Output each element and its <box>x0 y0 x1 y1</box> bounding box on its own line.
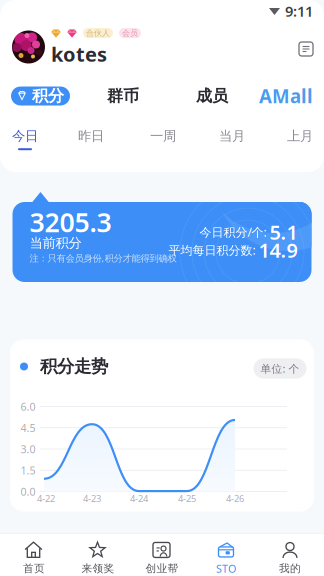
button[interactable]: 创业帮 <box>130 541 194 575</box>
staticText: 群币 <box>107 86 139 106</box>
staticText: 3205.3 <box>29 204 111 240</box>
button[interactable]: 我的 <box>258 541 322 575</box>
staticText: 6.0 <box>20 399 35 414</box>
staticText: 单位: 个 <box>260 361 299 376</box>
staticText: 上月 <box>287 128 313 144</box>
staticText: 积分 <box>32 86 64 106</box>
button[interactable]: Notices <box>299 42 313 56</box>
button[interactable]: 今日 <box>5 128 45 150</box>
staticText: 平均每日积分数: <box>168 242 255 258</box>
staticText: 来领奖 <box>81 562 114 575</box>
staticText: 9:11 <box>285 1 313 21</box>
staticText: 4-22 <box>37 492 55 505</box>
staticText: 成员 <box>196 86 228 106</box>
button[interactable]: 来领奖 <box>66 541 130 575</box>
staticText: kotes <box>51 41 107 67</box>
button[interactable]: 首页 <box>2 541 66 575</box>
button[interactable]: 积分 <box>11 86 70 105</box>
staticText: STO <box>216 561 236 576</box>
staticText: 昨日 <box>78 128 104 144</box>
staticText: 4-24 <box>130 492 148 505</box>
button[interactable]: 单位: 个 <box>253 358 306 379</box>
staticText: 4-26 <box>226 492 244 505</box>
staticText: 今日积分/个: <box>199 224 266 240</box>
staticText: 4.5 <box>20 421 35 435</box>
staticText: 我的 <box>279 562 301 575</box>
button[interactable]: AMall <box>259 84 313 108</box>
staticText: 创业帮 <box>145 562 178 575</box>
staticText: 会员 <box>122 28 138 38</box>
button[interactable]: 一周 <box>143 128 183 150</box>
staticText: 当月 <box>219 128 245 144</box>
staticText: 5.1 <box>269 219 297 245</box>
button[interactable]: 昨日 <box>71 128 111 150</box>
staticText: 3.0 <box>20 442 35 456</box>
staticText: 1.5 <box>20 463 35 477</box>
staticText: 一周 <box>150 128 176 144</box>
staticText: 当前积分 <box>29 235 81 251</box>
button[interactable]: 成员 <box>196 86 228 106</box>
staticText: 注：只有会员身份,积分才能得到确权 <box>29 252 176 264</box>
button[interactable]: 群币 <box>107 86 139 106</box>
button[interactable]: 当月 <box>212 128 252 150</box>
staticText: 首页 <box>23 562 45 575</box>
staticText: 合伙人 <box>86 28 110 38</box>
staticText: 积分走势 <box>40 356 108 377</box>
staticText: 4-25 <box>178 492 196 505</box>
staticText: AMall <box>259 84 313 108</box>
staticText: 4-23 <box>83 492 101 505</box>
staticText: 14.9 <box>258 237 297 263</box>
staticText: 0.0 <box>20 484 35 499</box>
staticText: 今日 <box>12 128 38 144</box>
button[interactable]: 上月 <box>280 128 320 150</box>
button[interactable]: STO <box>194 540 258 576</box>
